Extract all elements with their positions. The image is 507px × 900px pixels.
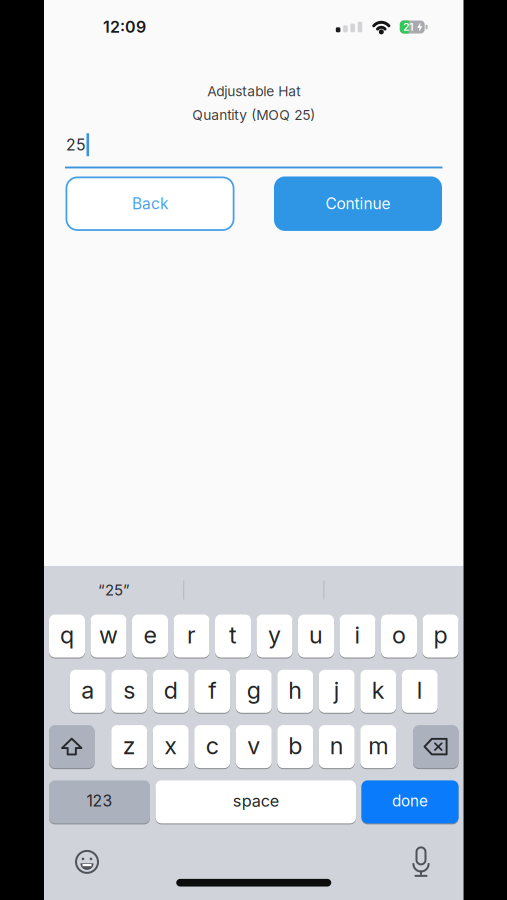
staticText: w <box>99 621 118 649</box>
button[interactable]: h <box>277 669 313 713</box>
button[interactable]: j <box>319 669 355 713</box>
button[interactable]: 123 <box>49 780 150 824</box>
staticText: l <box>417 676 423 704</box>
staticText: c <box>206 731 219 760</box>
staticText: 123 <box>86 791 112 810</box>
button[interactable]: a <box>70 669 106 713</box>
button[interactable]: Emoji <box>75 850 99 874</box>
button[interactable]: Back <box>65 176 234 231</box>
button[interactable]: w <box>90 614 126 658</box>
button[interactable]: f <box>194 669 230 713</box>
staticText: 21 <box>403 21 413 33</box>
staticText: s <box>123 676 135 704</box>
staticText: 12:09 <box>103 17 146 37</box>
button[interactable]: Dictation <box>409 847 433 877</box>
button[interactable]: o <box>381 614 417 658</box>
button[interactable]: q <box>49 614 85 658</box>
staticText: m <box>368 731 388 760</box>
button[interactable]: done <box>361 780 458 824</box>
staticText: o <box>392 621 406 649</box>
staticText: e <box>143 621 156 649</box>
staticText: space <box>233 791 279 811</box>
staticText: b <box>288 731 302 760</box>
button[interactable]: b <box>277 725 313 769</box>
staticText: Back <box>132 194 168 213</box>
button[interactable]: m <box>360 725 396 769</box>
staticText: x <box>164 731 177 760</box>
button[interactable]: u <box>298 614 334 658</box>
button[interactable]: Continue <box>274 176 442 231</box>
staticText: “25” <box>98 581 130 599</box>
button[interactable]: z <box>111 725 147 769</box>
staticText: j <box>334 676 340 704</box>
button[interactable]: space <box>155 780 356 824</box>
staticText: v <box>247 731 260 760</box>
button[interactable]: n <box>319 725 355 769</box>
staticText: n <box>330 731 344 760</box>
staticText: u <box>309 621 323 649</box>
staticText: d <box>164 676 178 704</box>
staticText: r <box>187 621 196 649</box>
button[interactable]: “25” <box>44 566 184 614</box>
button[interactable]: Delete <box>413 725 458 769</box>
staticText: done <box>392 792 428 810</box>
button[interactable]: e <box>132 614 168 658</box>
staticText: k <box>372 676 385 704</box>
button[interactable]: r <box>173 614 209 658</box>
staticText: y <box>268 621 281 649</box>
button[interactable]: p <box>422 614 458 658</box>
button[interactable]: suggestion 3 <box>324 566 463 614</box>
button[interactable]: d <box>153 669 189 713</box>
staticText: g <box>247 676 261 704</box>
button[interactable]: 25 <box>44 133 463 168</box>
staticText: h <box>288 676 302 704</box>
button[interactable]: v <box>236 725 272 769</box>
button[interactable]: c <box>194 725 230 769</box>
button[interactable]: s <box>111 669 147 713</box>
button[interactable]: t <box>215 614 251 658</box>
button[interactable]: i <box>339 614 375 658</box>
staticText: i <box>354 621 360 649</box>
button[interactable]: Shift <box>49 725 94 769</box>
button[interactable]: k <box>360 669 396 713</box>
staticText: Quantity (MOQ 25) <box>192 107 315 123</box>
staticText: Adjustable Hat <box>207 83 300 100</box>
button[interactable]: x <box>153 725 189 769</box>
staticText: 25 <box>66 135 86 154</box>
staticText: p <box>433 621 447 649</box>
staticText: t <box>229 621 237 649</box>
button[interactable]: l <box>402 669 438 713</box>
staticText: z <box>123 731 136 760</box>
staticText: q <box>60 621 74 649</box>
staticText: f <box>208 676 216 704</box>
staticText: Continue <box>325 194 390 213</box>
button[interactable]: g <box>236 669 272 713</box>
button[interactable]: y <box>256 614 292 658</box>
staticText: a <box>81 676 94 704</box>
